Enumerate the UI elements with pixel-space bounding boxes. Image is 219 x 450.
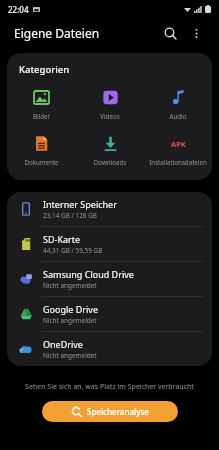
button[interactable]: Google Drive [7, 297, 212, 331]
staticText: APK [171, 139, 186, 149]
staticText: Kategorien [19, 63, 70, 76]
staticText: 23,14 GB / 128 GB [43, 211, 97, 220]
staticText: Videos [76, 112, 144, 120]
staticText: 44,31 GB / 59,59 GB [43, 246, 103, 255]
staticText: Audio [144, 112, 212, 120]
staticText: Interner Speicher [43, 198, 117, 210]
button[interactable]: Interner Speicher [7, 192, 212, 226]
button[interactable]: Audio [144, 86, 212, 122]
button[interactable]: Dokumente [7, 132, 76, 168]
button[interactable]: Mehr Optionen [183, 20, 209, 46]
button[interactable]: APK [144, 132, 212, 168]
button[interactable]: SD-Karte [7, 227, 212, 261]
button[interactable]: Samsung Cloud Drive [7, 262, 212, 296]
button[interactable]: Videos [76, 86, 144, 122]
staticText: 22:04 [8, 4, 29, 15]
staticText: Samsung Cloud Drive [43, 268, 134, 280]
staticText: Nicht angemeldet [43, 316, 97, 325]
staticText: Eigene Dateien [14, 25, 100, 41]
staticText: Sehen Sie sich an, was Platz im Speicher… [0, 382, 219, 392]
button[interactable]: Speicheranalyse [42, 401, 178, 422]
button[interactable]: OneDrive [7, 332, 212, 366]
button[interactable]: Bilder [7, 86, 76, 122]
staticText: OneDrive [43, 338, 83, 350]
staticText: Speicheranalyse [87, 406, 149, 417]
staticText: Google Drive [43, 303, 98, 315]
staticText: Downloads [76, 158, 144, 166]
button[interactable]: Downloads [76, 132, 144, 168]
staticText: Dokumente [7, 158, 76, 166]
staticText: Nicht angemeldet [43, 281, 97, 290]
staticText: SD-Karte [43, 233, 81, 245]
staticText: Installationsdateien [144, 158, 212, 166]
button[interactable]: Suchen [157, 20, 183, 46]
staticText: Bilder [7, 112, 76, 120]
staticText: Nicht angemeldet [43, 351, 97, 360]
